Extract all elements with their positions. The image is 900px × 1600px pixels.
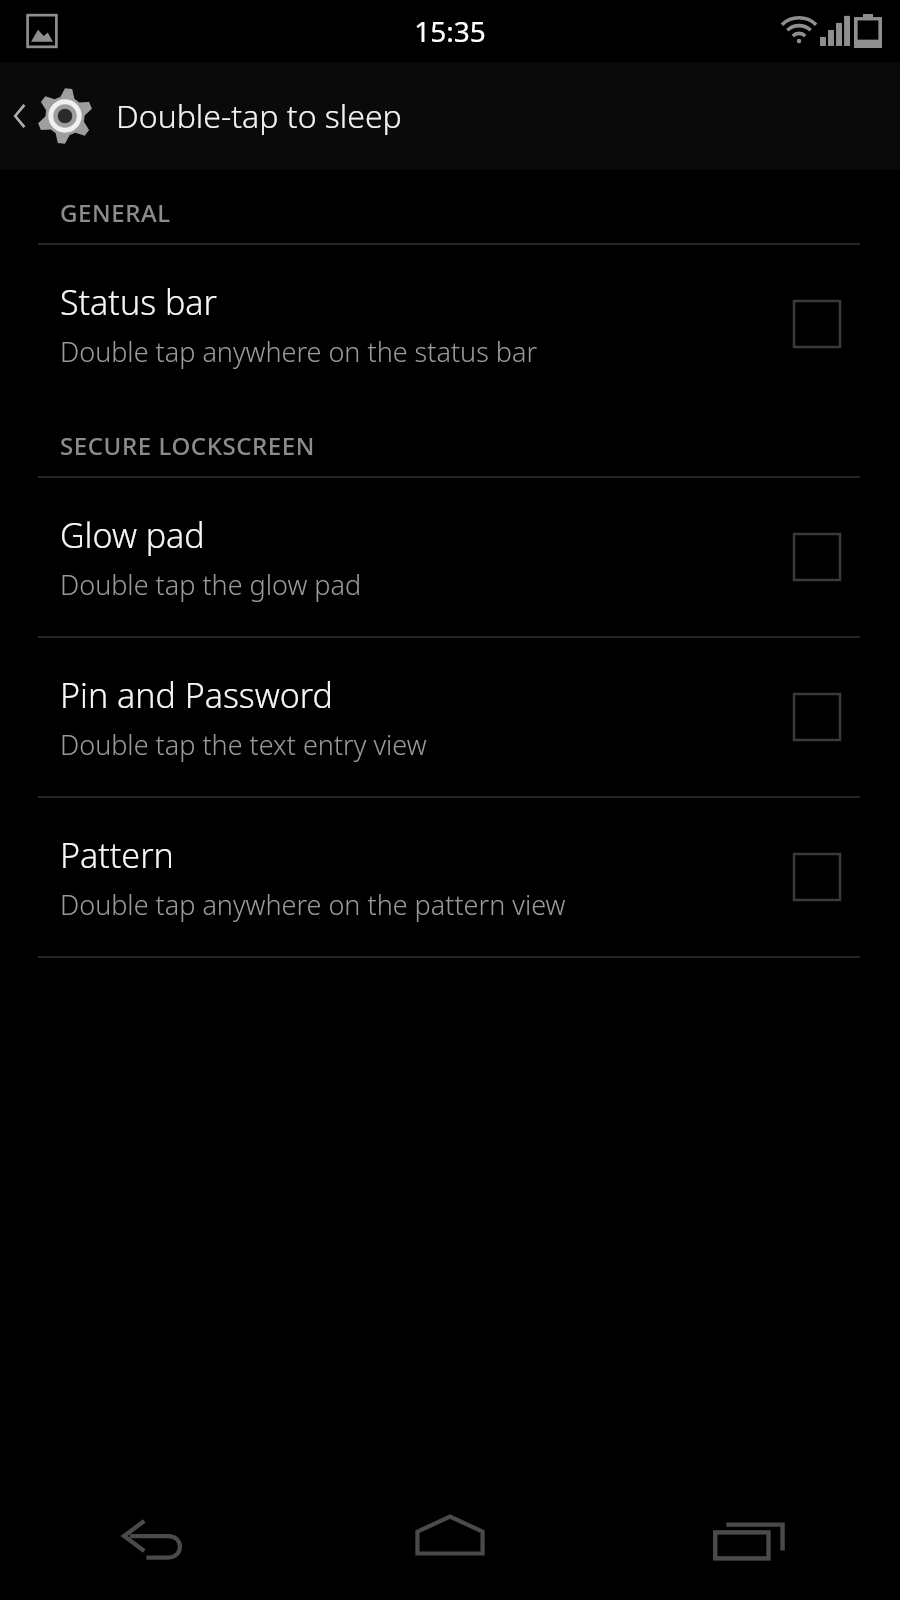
- staticText: Double tap anywhere on the pattern view: [60, 886, 566, 923]
- staticText: Glow pad: [60, 512, 205, 558]
- staticText: Double tap anywhere on the status bar: [60, 333, 538, 370]
- staticText: Pin and Password: [60, 672, 333, 718]
- button[interactable]: Recent apps: [600, 1470, 900, 1600]
- button[interactable]: Pin and Password checkbox: [794, 694, 840, 740]
- button[interactable]: Pattern: [0, 798, 900, 956]
- button[interactable]: Status bar: [0, 245, 900, 403]
- button[interactable]: Home: [300, 1470, 600, 1600]
- button[interactable]: Pin and Password: [0, 638, 900, 796]
- staticText: Double tap the glow pad: [60, 566, 362, 603]
- staticText: Status bar: [60, 279, 217, 325]
- staticText: Double-tap to sleep: [116, 94, 402, 138]
- staticText: Double tap the text entry view: [60, 726, 427, 763]
- staticText: 15:35: [414, 12, 486, 50]
- staticText: SECURE LOCKSCREEN: [60, 429, 316, 462]
- button[interactable]: Glow pad: [0, 478, 900, 636]
- button[interactable]: Pattern checkbox: [794, 854, 840, 900]
- staticText: GENERAL: [60, 196, 171, 229]
- button[interactable]: Navigate up: [0, 62, 900, 170]
- staticText: Pattern: [60, 832, 174, 878]
- button[interactable]: Glow pad checkbox: [794, 534, 840, 580]
- button[interactable]: Back: [0, 1470, 300, 1600]
- button[interactable]: Status bar checkbox: [794, 301, 840, 347]
